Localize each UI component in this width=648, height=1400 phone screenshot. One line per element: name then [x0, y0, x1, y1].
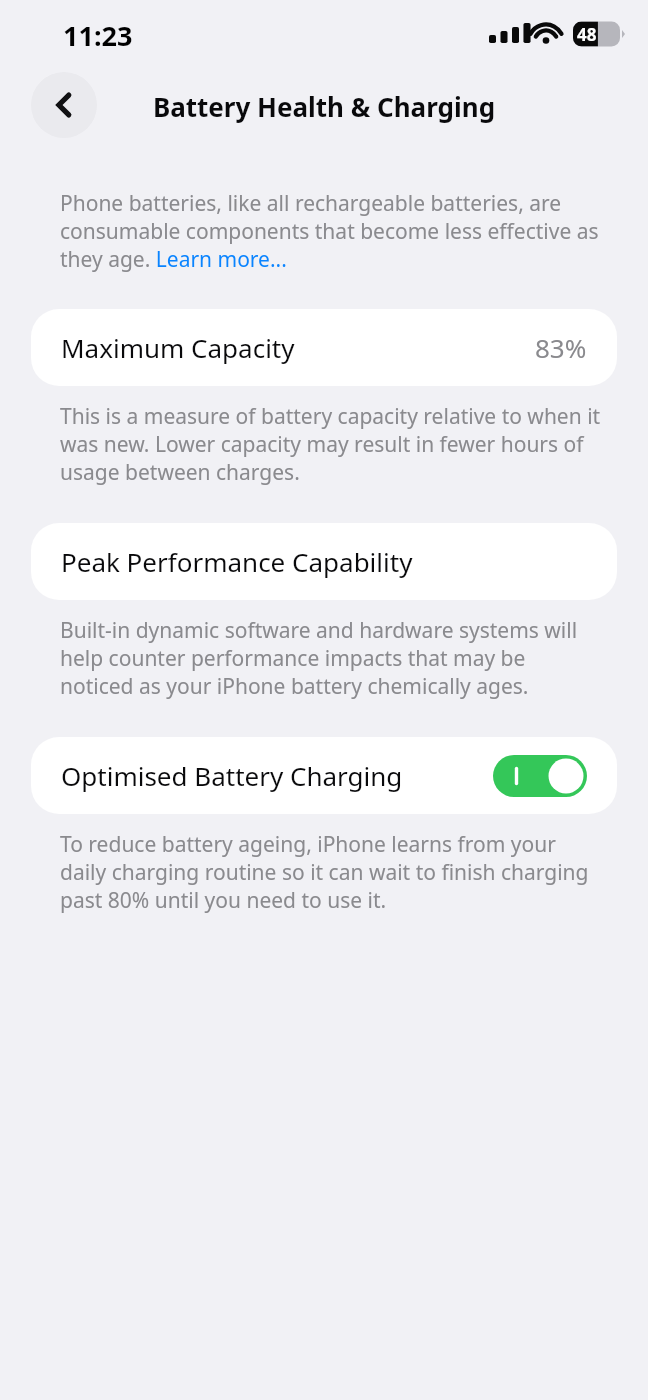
staticText: Optimised Battery Charging — [61, 758, 403, 793]
staticText: 11:23 — [63, 17, 133, 54]
staticText: Built-in dynamic software and hardware s… — [60, 616, 602, 700]
button[interactable]: Optimised Battery Charging, on — [493, 755, 587, 797]
staticText: Battery Health & Charging — [0, 89, 648, 124]
staticText: Maximum Capacity — [61, 330, 295, 365]
staticText: Phone batteries, like all rechargeable b… — [60, 189, 602, 273]
staticText: Peak Performance Capability — [61, 544, 413, 579]
staticText: 83% — [535, 330, 587, 365]
staticText: To reduce battery ageing, iPhone learns … — [60, 830, 602, 914]
button[interactable]: Peak Performance Capability — [31, 523, 617, 600]
button[interactable]: Back — [31, 72, 97, 138]
button[interactable]: Maximum Capacity — [31, 309, 617, 386]
staticText: 48 — [577, 23, 597, 46]
staticText: This is a measure of battery capacity re… — [60, 402, 602, 486]
button[interactable]: Optimised Battery Charging — [31, 737, 617, 814]
